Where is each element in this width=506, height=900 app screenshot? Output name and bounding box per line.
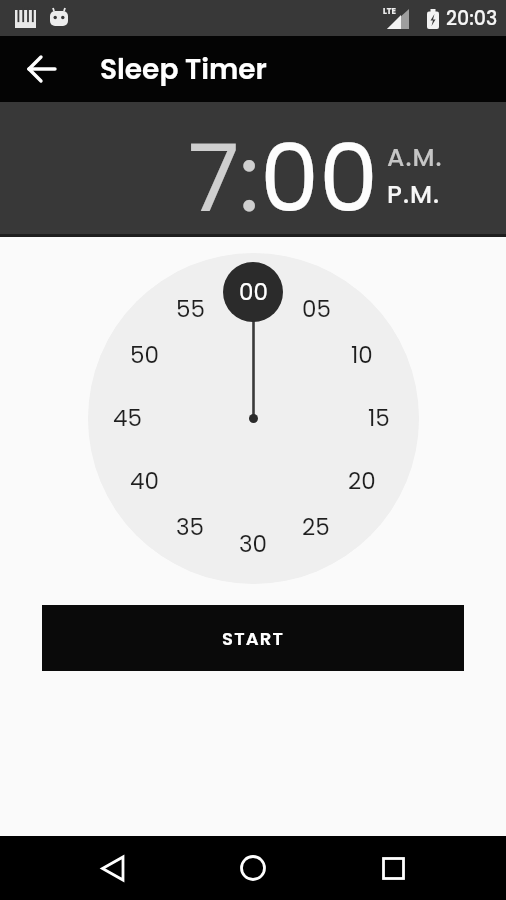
button[interactable]: P.M. — [387, 177, 440, 212]
button[interactable] — [208, 836, 298, 900]
staticText: 20 — [348, 465, 376, 497]
staticText: 00 — [260, 112, 379, 244]
staticText: 20:03 — [446, 5, 498, 32]
button[interactable]: A.M. — [387, 140, 443, 175]
staticText: 10 — [351, 339, 373, 371]
staticText: A.M. — [387, 140, 443, 175]
staticText: 05 — [302, 293, 331, 325]
staticText: 25 — [302, 511, 330, 543]
button[interactable]: 25 — [291, 511, 341, 543]
button[interactable]: 15 — [354, 402, 404, 434]
staticText: 30 — [239, 528, 267, 560]
staticText: P.M. — [387, 177, 440, 212]
button[interactable]: 20 — [337, 465, 387, 497]
staticText: 45 — [113, 402, 142, 434]
button[interactable]: 05 — [291, 293, 341, 325]
button[interactable]: 45 — [102, 402, 152, 434]
button[interactable]: 35 — [165, 511, 215, 543]
staticText: 55 — [176, 293, 205, 325]
button[interactable] — [68, 836, 158, 900]
staticText: 00 — [239, 276, 268, 308]
button[interactable]: 40 — [119, 465, 169, 497]
button[interactable] — [348, 836, 438, 900]
button[interactable]: START — [42, 605, 464, 671]
staticText: 15 — [368, 402, 390, 434]
staticText: LTE — [383, 6, 396, 17]
button[interactable] — [14, 41, 70, 97]
staticText: START — [222, 626, 285, 651]
button[interactable]: 50 — [119, 339, 169, 371]
staticText: 35 — [176, 511, 204, 543]
staticText: 7: — [188, 112, 260, 244]
button[interactable]: 00 — [223, 262, 283, 322]
button[interactable]: 30 — [228, 528, 278, 560]
staticText: 50 — [130, 339, 159, 371]
button[interactable]: 10 — [337, 339, 387, 371]
button[interactable]: 55 — [165, 293, 215, 325]
staticText: 40 — [130, 465, 159, 497]
staticText: Sleep Timer — [100, 50, 267, 89]
